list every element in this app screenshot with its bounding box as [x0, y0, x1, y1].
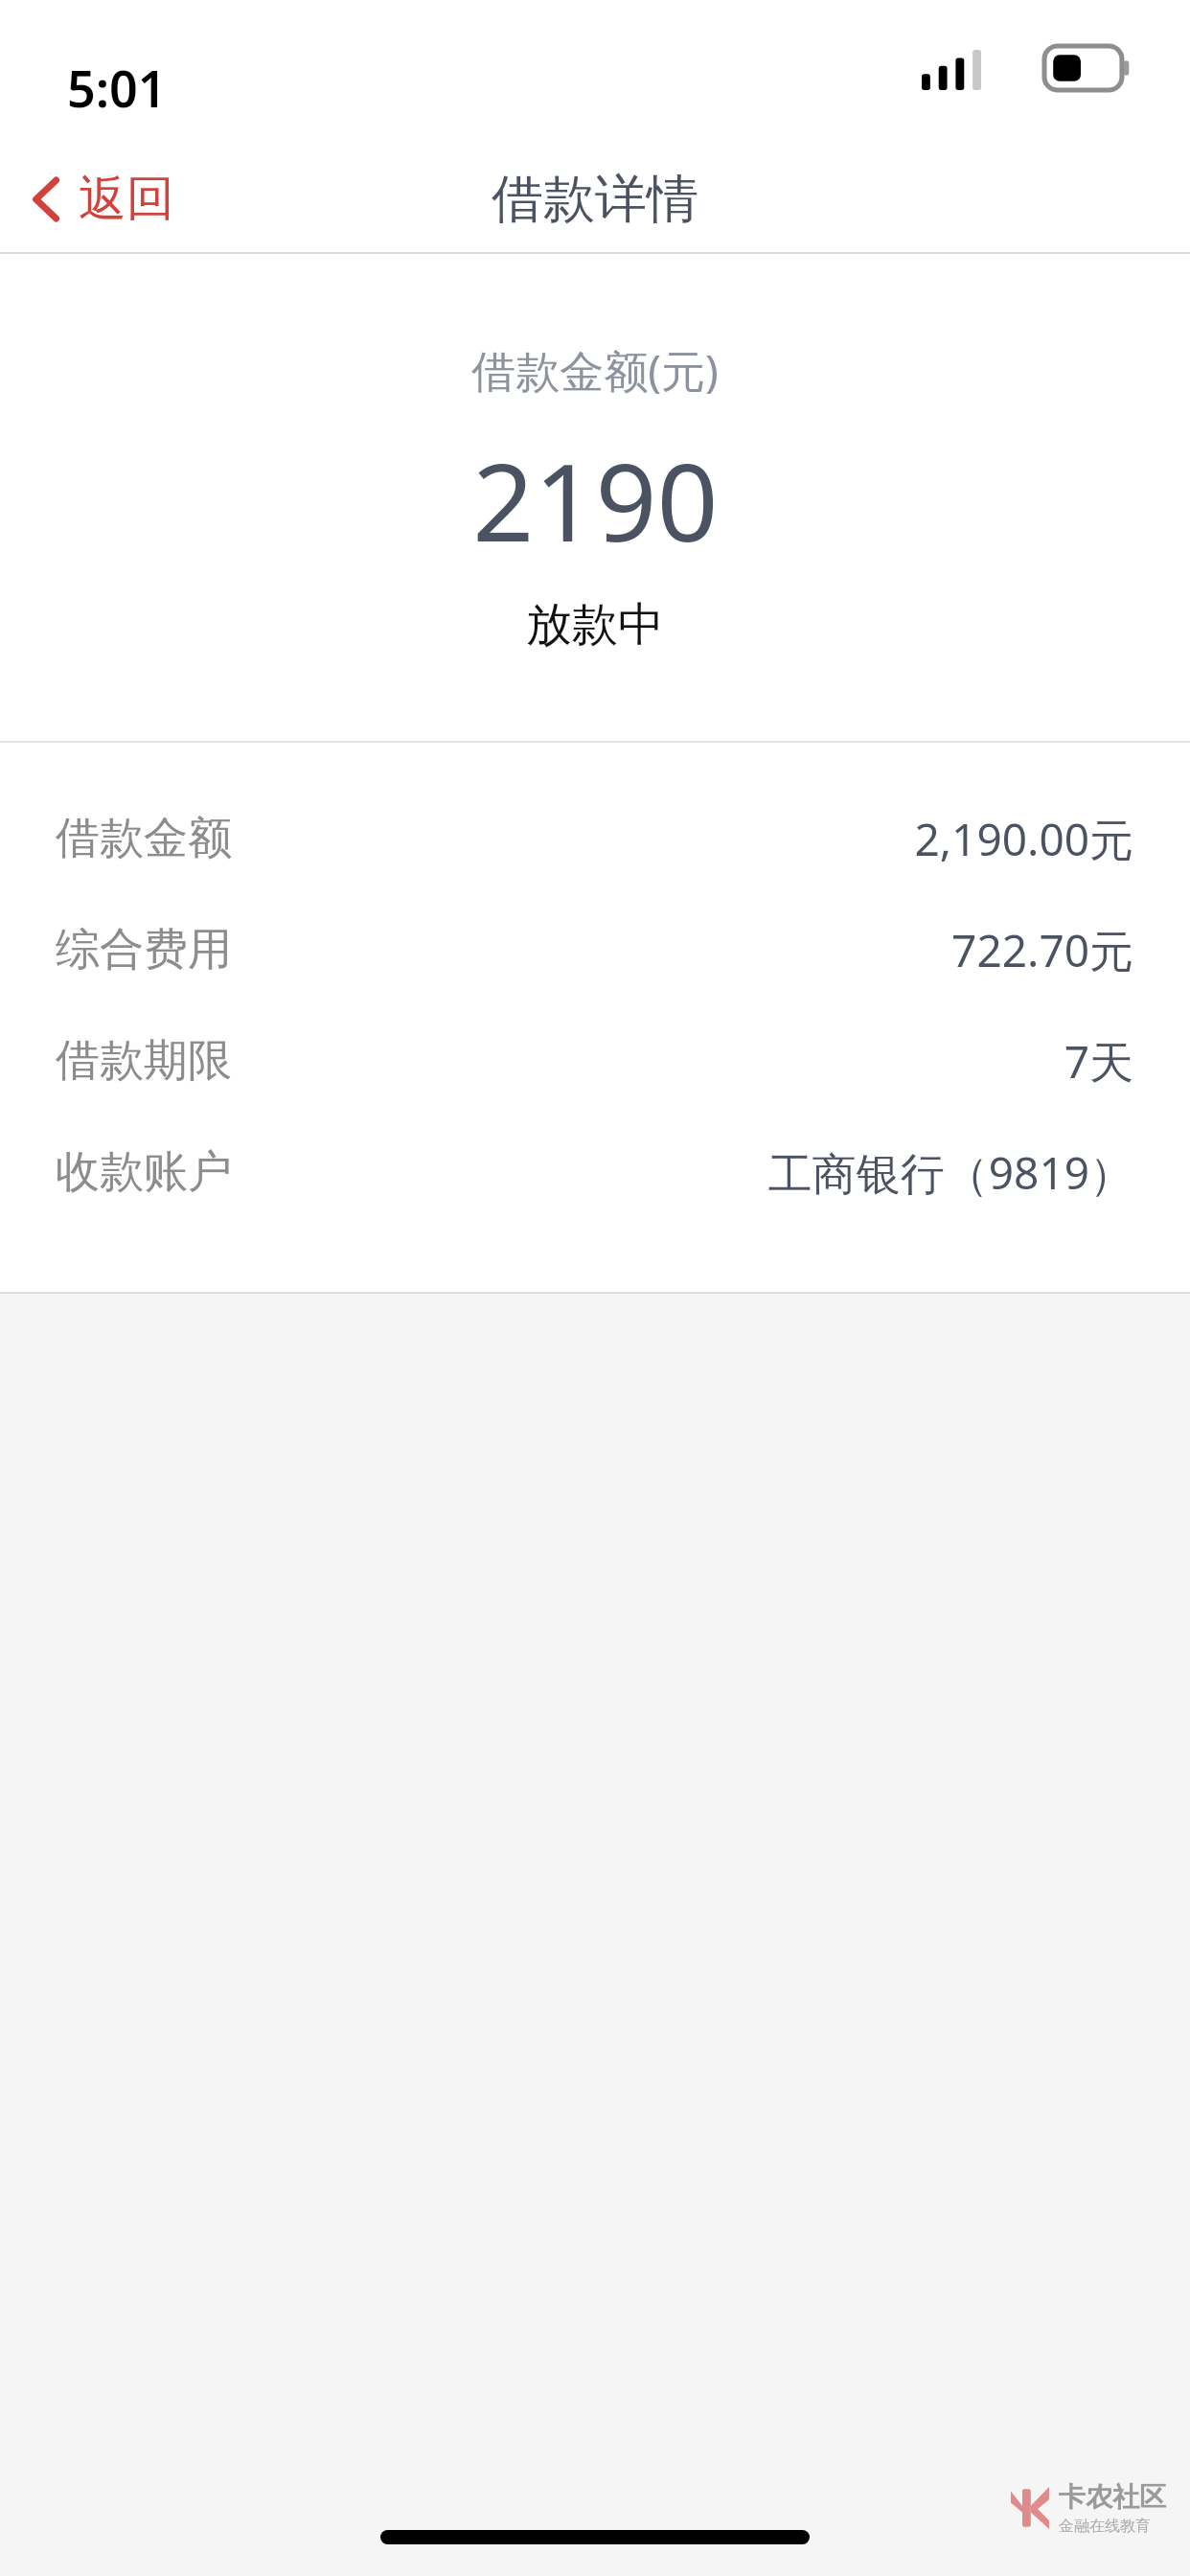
staticText: 借款详情	[492, 167, 698, 232]
staticText: 返回	[79, 169, 174, 229]
staticText: 借款期限	[56, 1033, 232, 1089]
staticText: 卡农社区	[1059, 2480, 1166, 2514]
button[interactable]: 借款期限	[0, 1005, 1190, 1116]
staticText: 收款账户	[56, 1144, 232, 1200]
button[interactable]: 收款账户	[0, 1116, 1190, 1228]
staticText: 借款金额(元)	[471, 340, 719, 401]
staticText: 借款金额	[56, 811, 232, 866]
staticText: 工商银行（9819）	[767, 1142, 1133, 1203]
button[interactable]: 借款金额	[0, 783, 1190, 894]
staticText: 7天	[1064, 1031, 1133, 1092]
staticText: 5:01	[67, 54, 167, 122]
staticText: 金融在线教育	[1059, 2517, 1151, 2536]
staticText: 放款中	[526, 596, 664, 654]
staticText: 2190	[472, 426, 719, 573]
staticText: 722.70元	[951, 920, 1133, 980]
button[interactable]: 返回	[0, 144, 197, 254]
other: 卡农社区	[1011, 2480, 1166, 2536]
staticText: 2,190.00元	[914, 809, 1133, 869]
staticText: 综合费用	[56, 922, 232, 977]
button[interactable]: 综合费用	[0, 894, 1190, 1005]
